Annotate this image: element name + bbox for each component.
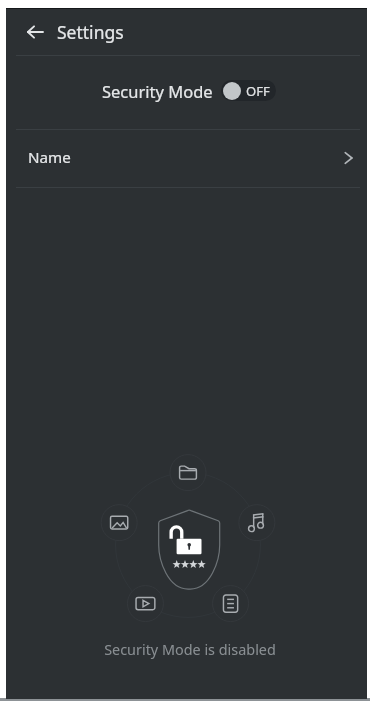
- staticText: Security Mode: [102, 80, 213, 102]
- button[interactable]: Name: [6, 129, 367, 186]
- staticText: OFF: [246, 82, 270, 100]
- staticText: Name: [28, 147, 71, 168]
- button[interactable]: Security Mode toggle, off: [221, 80, 276, 101]
- button[interactable]: Back: [22, 19, 47, 44]
- staticText: Settings: [57, 20, 124, 44]
- button[interactable]: Security Mode: [6, 54, 367, 127]
- staticText: Security Mode is disabled: [13, 640, 367, 660]
